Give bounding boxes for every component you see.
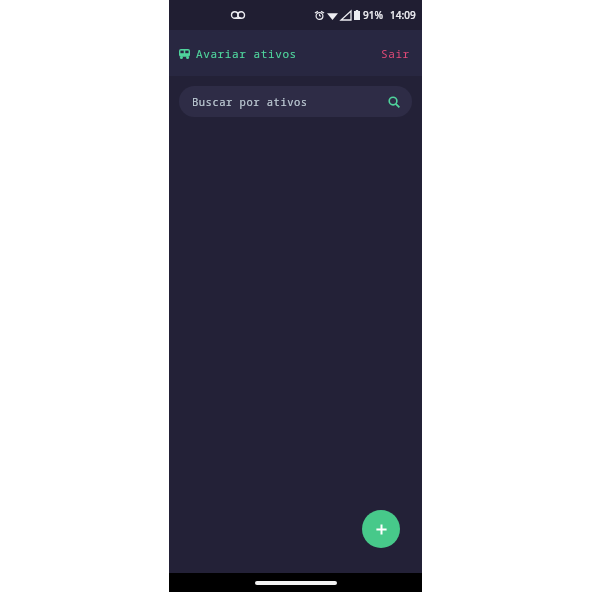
button[interactable]: Buscar por ativos <box>179 86 412 117</box>
button[interactable]: Veículo <box>177 42 299 65</box>
button[interactable]: Sair <box>377 40 414 67</box>
staticText: Buscar por ativos <box>192 95 308 109</box>
staticText: 91% <box>363 8 383 22</box>
other: Buscar <box>388 96 400 108</box>
button[interactable]: Adicionar <box>362 510 400 548</box>
staticText: 14:09 <box>390 8 416 22</box>
other: Veículo <box>179 49 190 59</box>
staticText: Avariar ativos <box>196 46 297 61</box>
staticText: Sair <box>381 46 410 61</box>
